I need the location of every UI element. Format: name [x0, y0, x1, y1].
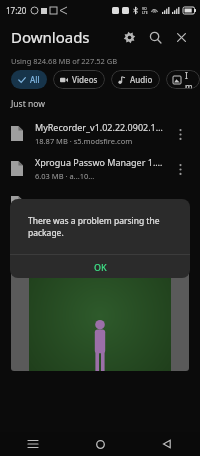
- button[interactable]: MyRecorder_v1.02.22.0902.1.apk: [0, 116, 200, 151]
- button[interactable]: [11, 251, 189, 371]
- button[interactable]: Settings: [116, 24, 142, 50]
- button[interactable]: All: [11, 70, 47, 89]
- button[interactable]: Audio: [111, 70, 160, 89]
- button[interactable]: More options: [171, 125, 189, 143]
- button[interactable]: 41.52 MB · download3625.sfile.mobi: [0, 186, 200, 221]
- button[interactable]: OK: [10, 255, 190, 278]
- staticText: VO LTE: [142, 6, 148, 15]
- staticText: Sep 3, 2025: [11, 233, 57, 245]
- staticText: All: [30, 74, 40, 85]
- staticText: Audio: [130, 74, 153, 85]
- staticText: Using 824.68 MB of 227.52 GB: [11, 56, 118, 66]
- staticText: 17:20: [6, 5, 27, 16]
- button[interactable]: Back: [147, 432, 187, 456]
- button[interactable]: Images: [166, 70, 200, 89]
- button[interactable]: Recents: [13, 432, 53, 456]
- staticText: OK: [94, 261, 107, 273]
- button[interactable]: Search: [142, 24, 168, 50]
- staticText: Downloads: [11, 27, 90, 47]
- staticText: Xprogua Passwo Manager 1.4.4 ....a...: [35, 156, 165, 168]
- staticText: 18.87 MB · s5.modsfire.com: [35, 136, 133, 146]
- button[interactable]: Xprogua Passwo Manager 1.4.4 ....a...: [0, 151, 200, 186]
- button[interactable]: Videos: [53, 70, 105, 89]
- button[interactable]: More options: [171, 195, 189, 213]
- staticText: Just now: [11, 98, 45, 110]
- staticText: Images: [185, 70, 193, 89]
- button[interactable]: Home: [80, 432, 120, 456]
- button[interactable]: More options: [171, 160, 189, 178]
- staticText: 6.03 MB · a...10...: [35, 171, 95, 181]
- staticText: There was a problem parsing the package.: [28, 215, 172, 239]
- staticText: Videos: [72, 74, 98, 85]
- button[interactable]: Close: [168, 24, 194, 50]
- staticText: MyRecorder_v1.02.22.0902.1.apk: [35, 121, 165, 133]
